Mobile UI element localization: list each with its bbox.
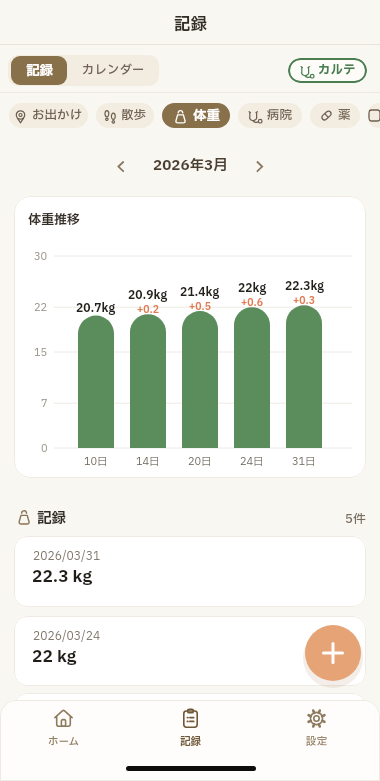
button[interactable]: 設定 [253, 700, 380, 762]
button[interactable] [305, 625, 361, 681]
staticText: 22 [34, 300, 48, 316]
button[interactable]: 記録 [127, 700, 253, 762]
button[interactable]: カルテ [288, 58, 367, 83]
button[interactable]: お出かけ [9, 103, 88, 128]
staticText: カルテ [318, 61, 356, 80]
staticText: 2026/03/31 [33, 548, 101, 565]
staticText: 7 [41, 396, 48, 412]
staticText: 0 [41, 441, 48, 457]
button[interactable]: 散歩 [96, 103, 154, 128]
button[interactable]: 2026/03/24 [14, 616, 366, 686]
staticText: 病院 [267, 106, 293, 125]
staticText: 記録 [37, 508, 66, 530]
staticText: 21.4kg [180, 284, 220, 301]
staticText: 20日 [188, 454, 212, 470]
button[interactable] [109, 154, 133, 178]
button[interactable]: 2026/03/31 [14, 536, 366, 607]
staticText: 記録 [174, 13, 207, 38]
button[interactable]: 薬 [310, 103, 360, 128]
staticText: 15 [34, 345, 48, 361]
staticText: 24日 [240, 454, 264, 470]
staticText: 記録 [26, 61, 53, 81]
staticText: 20.7kg [76, 300, 116, 317]
staticText: 設定 [306, 734, 327, 750]
button[interactable] [248, 154, 272, 178]
button[interactable]: 病院 [238, 103, 302, 128]
staticText: 30 [34, 249, 48, 265]
staticText: 記録 [180, 734, 201, 750]
staticText: 2026/03/24 [33, 628, 101, 645]
staticText: 22kg [238, 280, 267, 297]
staticText: 体重推移 [28, 210, 81, 229]
staticText: 5件 [345, 510, 366, 529]
staticText: 22 kg [32, 645, 77, 670]
button[interactable]: 記録 [0, 0, 380, 44]
staticText: 2026年3月 [153, 155, 228, 177]
button[interactable]: 記念 [368, 103, 380, 128]
staticText: 体重 [193, 106, 220, 126]
staticText: 10日 [84, 454, 108, 470]
staticText: 22.3 kg [32, 565, 93, 590]
button[interactable]: ホーム [0, 700, 127, 762]
button[interactable]: 体重 [162, 103, 230, 128]
button[interactable]: カレンダー [67, 55, 159, 86]
staticText: +0.2 [137, 302, 160, 317]
staticText: 20.9kg [128, 287, 168, 304]
button[interactable]: 記録 [11, 56, 67, 85]
staticText: 散歩 [121, 106, 147, 125]
staticText: ホーム [48, 734, 80, 750]
staticText: 薬 [338, 106, 351, 125]
staticText: +0.6 [241, 295, 264, 310]
staticText: お出かけ [32, 106, 83, 125]
staticText: +0.5 [189, 299, 212, 314]
staticText: 31日 [292, 454, 316, 470]
staticText: 22.3kg [285, 278, 324, 295]
staticText: カレンダー [82, 61, 145, 80]
staticText: +0.3 [293, 293, 316, 308]
staticText: 14日 [136, 454, 160, 470]
